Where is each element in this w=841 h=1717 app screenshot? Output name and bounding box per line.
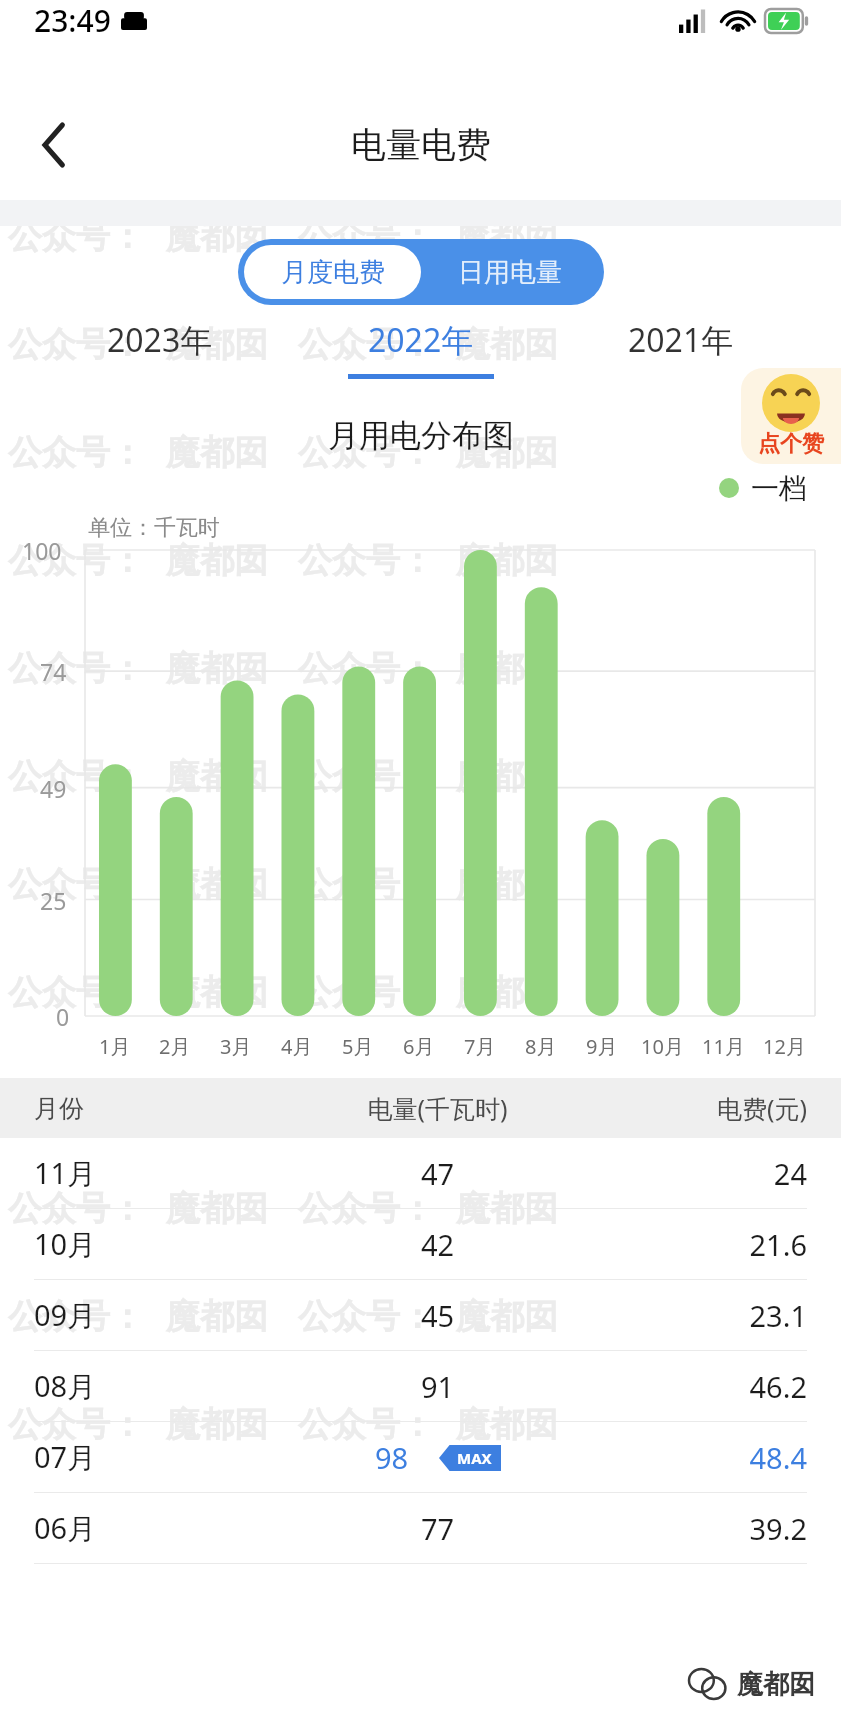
staticText: 48.4 <box>661 1438 807 1477</box>
staticText: 一档 <box>751 471 807 506</box>
staticText: 公众号： <box>8 755 144 798</box>
staticText: 24 <box>661 1154 807 1193</box>
button[interactable]: 2023年 <box>60 318 260 374</box>
staticText: 魔都囡 <box>737 1668 815 1701</box>
staticText: 4月 <box>281 1033 313 1060</box>
staticText: 11月 <box>702 1033 745 1060</box>
staticText: 公众号： <box>8 971 144 1014</box>
staticText: 23:49 <box>34 0 111 41</box>
staticText: 45 <box>421 1296 455 1335</box>
staticText: 魔都囡 <box>456 863 558 906</box>
staticText: 魔都囡 <box>456 1295 558 1338</box>
staticText: 9月 <box>586 1033 618 1060</box>
staticText: 公众号： <box>8 431 144 474</box>
staticText: 魔都囡 <box>166 323 268 366</box>
staticText: 魔都囡 <box>456 647 558 690</box>
staticText: 23.1 <box>661 1296 807 1335</box>
staticText: 1月 <box>99 1033 131 1060</box>
staticText: 魔都囡 <box>166 1187 268 1230</box>
button[interactable]: 06月 <box>0 1493 841 1563</box>
staticText: 2023年 <box>107 318 213 362</box>
staticText: 魔都囡 <box>456 539 558 582</box>
staticText: 电量(千瓦时) <box>214 1091 661 1125</box>
staticText: 公众号： <box>298 323 434 366</box>
staticText: 10月 <box>641 1033 684 1060</box>
button[interactable]: 08月 <box>0 1351 841 1421</box>
staticText: 11月 <box>34 1153 214 1193</box>
staticText: 公众号： <box>8 323 144 366</box>
staticText: 魔都囡 <box>456 431 558 474</box>
staticText: 魔都囡 <box>166 863 268 906</box>
staticText: 公众号： <box>298 1187 434 1230</box>
staticText: 7月 <box>464 1033 496 1060</box>
staticText: 魔都囡 <box>166 1403 268 1446</box>
staticText: 公众号： <box>8 1187 144 1230</box>
staticText: 98 <box>375 1438 409 1477</box>
staticText: 公众号： <box>298 863 434 906</box>
staticText: 47 <box>421 1154 455 1193</box>
staticText: 公众号： <box>298 755 434 798</box>
staticText: 2021年 <box>628 318 734 362</box>
staticText: 5月 <box>342 1033 374 1060</box>
button[interactable]: 11月 <box>0 1138 841 1208</box>
staticText: 月份 <box>34 1093 214 1124</box>
staticText: 魔都囡 <box>166 215 268 258</box>
button[interactable]: 10月 <box>0 1209 841 1279</box>
staticText: 07月 <box>34 1437 214 1477</box>
button[interactable]: 07月 <box>0 1422 841 1492</box>
staticText: 电费(元) <box>661 1091 807 1125</box>
staticText: MAX <box>457 1448 492 1468</box>
staticText: 公众号： <box>8 1295 144 1338</box>
staticText: 月度电费 <box>281 256 385 289</box>
staticText: 39.2 <box>661 1509 807 1548</box>
staticText: 魔都囡 <box>456 1403 558 1446</box>
staticText: 魔都囡 <box>456 1187 558 1230</box>
staticText: 公众号： <box>298 1295 434 1338</box>
button[interactable]: 日用电量 <box>421 245 598 299</box>
staticText: 49 <box>40 773 67 804</box>
staticText: 21.6 <box>661 1225 807 1264</box>
staticText: 公众号： <box>298 1403 434 1446</box>
staticText: 公众号： <box>298 431 434 474</box>
button[interactable]: 2022年 <box>321 318 521 379</box>
staticText: 公众号： <box>298 539 434 582</box>
staticText: 09月 <box>34 1295 214 1335</box>
staticText: 3月 <box>220 1033 252 1060</box>
staticText: 100 <box>22 535 62 566</box>
staticText: 公众号： <box>8 539 144 582</box>
button[interactable]: 点个赞 <box>741 368 841 464</box>
staticText: 8月 <box>525 1033 557 1060</box>
staticText: 77 <box>421 1509 455 1548</box>
staticText: 魔都囡 <box>456 971 558 1014</box>
staticText: 公众号： <box>298 647 434 690</box>
staticText: 电量电费 <box>351 123 491 167</box>
staticText: 公众号： <box>298 971 434 1014</box>
button[interactable]: 月度电费 <box>244 245 421 299</box>
staticText: 魔都囡 <box>166 755 268 798</box>
staticText: 6月 <box>403 1033 435 1060</box>
staticText: 公众号： <box>8 647 144 690</box>
staticText: 魔都囡 <box>166 1295 268 1338</box>
staticText: 公众号： <box>8 1403 144 1446</box>
staticText: 魔都囡 <box>166 971 268 1014</box>
staticText: 42 <box>421 1225 455 1264</box>
staticText: 2022年 <box>368 318 474 362</box>
staticText: 08月 <box>34 1366 214 1406</box>
staticText: 公众号： <box>298 215 434 258</box>
staticText: 0 <box>56 1001 70 1032</box>
staticText: 魔都囡 <box>456 755 558 798</box>
staticText: 74 <box>40 656 67 687</box>
staticText: 公众号： <box>8 215 144 258</box>
staticText: 魔都囡 <box>456 1079 558 1122</box>
staticText: 魔都囡 <box>166 647 268 690</box>
staticText: 魔都囡 <box>166 431 268 474</box>
button[interactable]: Back <box>24 115 84 175</box>
staticText: 25 <box>40 885 67 916</box>
staticText: 46.2 <box>661 1367 807 1406</box>
staticText: 2月 <box>159 1033 191 1060</box>
button[interactable]: 09月 <box>0 1280 841 1350</box>
staticText: 点个赞 <box>758 430 824 458</box>
staticText: 公众号： <box>8 863 144 906</box>
button[interactable]: 2021年 <box>581 318 781 374</box>
